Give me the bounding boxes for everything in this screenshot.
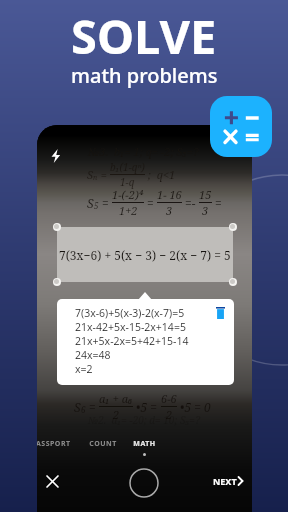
button[interactable]: Shutter: [126, 465, 162, 501]
button[interactable]: Flash: [45, 145, 67, 167]
staticText: 21x+5x-2x=5+42+15-14: [75, 334, 189, 348]
staticText: 2: [113, 407, 120, 422]
button[interactable]: MATH: [114, 439, 174, 457]
staticText: n: [93, 173, 98, 183]
staticText: ; q<1: [145, 167, 176, 182]
staticText: S: [87, 195, 94, 211]
staticText: =: [144, 195, 157, 211]
staticText: 1− 16: [157, 187, 182, 202]
staticText: 7(3x-6)+5(x-3)-2(x-7)=5: [75, 306, 185, 320]
staticText: S: [87, 167, 93, 182]
staticText: №3. b₁= 1; q= -2; S₅=?: [88, 144, 199, 159]
button[interactable]: PASSPORT: [37, 439, 81, 457]
staticText: 1+2: [119, 203, 138, 218]
staticText: 6−6: [161, 391, 177, 406]
staticText: =−: [182, 195, 199, 211]
staticText: •5 =: [133, 399, 161, 415]
button[interactable]: NEXT: [210, 473, 246, 489]
staticText: PASSPORT: [37, 439, 71, 449]
button[interactable]: Selected equation: [57, 227, 233, 282]
staticText: S: [74, 399, 81, 415]
button[interactable]: COUNT: [73, 439, 133, 457]
staticText: NEXT: [213, 475, 237, 487]
staticText: 3: [202, 203, 209, 218]
staticText: x=2: [75, 362, 93, 376]
staticText: SOLVE: [71, 4, 217, 68]
staticText: MATH: [133, 439, 156, 449]
staticText: =: [98, 167, 110, 182]
staticText: a₁ + a₆: [99, 391, 133, 406]
staticText: 15: [199, 187, 212, 202]
staticText: math problems: [71, 62, 218, 89]
staticText: 1−q: [120, 175, 135, 189]
staticText: 1−(−2)⁴: [112, 187, 144, 202]
staticText: 21x-42+5x-15-2x+14=5: [75, 320, 186, 334]
staticText: 3: [166, 203, 173, 218]
staticText: 6: [81, 404, 86, 415]
staticText: 5: [94, 200, 99, 211]
staticText: =: [99, 195, 112, 211]
staticText: COUNT: [89, 439, 117, 449]
staticText: 2: [166, 407, 173, 422]
staticText: =: [212, 195, 222, 211]
staticText: №2. a₁= -20; d= 10; S₅=?: [88, 413, 200, 427]
button[interactable]: Calculator app icon: [210, 96, 272, 157]
staticText: b₁(1−qⁿ): [110, 160, 145, 174]
button[interactable]: Delete: [212, 305, 228, 321]
staticText: =: [86, 399, 99, 415]
staticText: 7(3x−6) + 5(x − 3) − 2(x − 7) = 5: [59, 247, 231, 263]
staticText: •5 = 0: [177, 399, 211, 415]
button[interactable]: Close: [37, 466, 67, 496]
staticText: 24x=48: [75, 348, 111, 362]
